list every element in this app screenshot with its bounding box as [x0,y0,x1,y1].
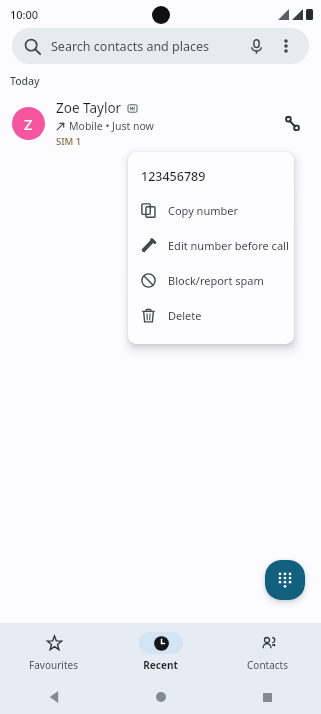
button[interactable]: Recents [214,680,321,714]
staticText: Copy number [168,203,239,218]
staticText: Z [24,114,33,134]
button[interactable]: Dialpad [265,560,305,600]
staticText: Recent [143,658,178,672]
button[interactable]: Edit number before call [128,228,294,263]
button[interactable]: Back [0,680,107,714]
staticText: Favourites [29,658,78,672]
button[interactable]: Search contacts and places [12,28,309,64]
button[interactable]: Voice search [245,35,267,57]
staticText: Mobile • Just now [69,119,154,133]
button[interactable]: Recent [107,623,214,680]
staticText: Delete [168,308,202,323]
button[interactable]: Home [107,680,214,714]
staticText: Block/report spam [168,273,264,288]
staticText: Contacts [247,658,288,672]
staticText: Today [10,74,40,88]
button[interactable]: Call [275,106,309,140]
button[interactable]: More options [275,35,297,57]
staticText: Edit number before call [168,238,289,253]
button[interactable]: Favourites [0,623,107,680]
staticText: 123456789 [141,168,206,185]
button[interactable]: Contacts [214,623,321,680]
button[interactable]: Copy number [128,193,294,228]
button[interactable]: Block/report spam [128,263,294,298]
staticText: 10:00 [10,7,39,22]
staticText: Zoe Taylor [56,99,122,117]
button[interactable]: Delete [128,298,294,333]
staticText: SIM 1 [56,135,82,148]
button[interactable]: Z [0,94,321,152]
staticText: Search contacts and places [51,38,210,55]
